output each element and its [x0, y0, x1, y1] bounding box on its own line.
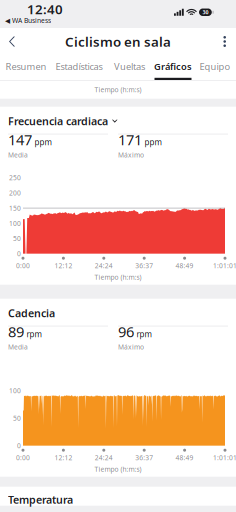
staticText: Vueltas	[114, 60, 145, 73]
staticText: 0:00	[16, 453, 30, 462]
staticText: 100	[9, 386, 21, 395]
staticText: 0	[17, 249, 21, 258]
staticText: 1:01:01	[213, 261, 236, 270]
staticText: Tiempo (h:m:s)	[94, 273, 141, 282]
staticText: Frecuencia cardiaca	[8, 114, 108, 128]
button[interactable]: More options	[211, 30, 236, 53]
staticText: 12:40	[27, 0, 63, 18]
staticText: rpm	[26, 329, 41, 339]
staticText: Máximo	[118, 150, 144, 159]
button[interactable]: Frecuencia cardiaca	[8, 107, 228, 134]
staticText: 147	[8, 130, 32, 149]
button[interactable]: Equipo	[195, 55, 235, 80]
staticText: Gráficos	[154, 60, 192, 73]
button[interactable]: Cadencia	[8, 299, 228, 326]
staticText: 36:37	[135, 453, 153, 462]
staticText: 89	[8, 322, 24, 341]
staticText: Ciclismo en sala	[65, 33, 171, 50]
staticText: 48:49	[176, 453, 194, 462]
staticText: 30	[202, 9, 208, 16]
staticText: Temperatura	[8, 493, 73, 507]
staticText: 48:49	[176, 261, 194, 270]
button[interactable]: Gráficos	[151, 55, 195, 80]
staticText: Media	[8, 342, 28, 351]
staticText: ppm	[144, 137, 161, 147]
button[interactable]: Resumen	[2, 55, 50, 80]
staticText: 96	[118, 322, 134, 341]
staticText: Tiempo (h:m:s)	[94, 85, 141, 94]
staticText: Tiempo (h:m:s)	[94, 465, 141, 474]
staticText: 200	[9, 188, 21, 197]
button[interactable]: Back	[0, 30, 27, 52]
staticText: 0:00	[16, 261, 30, 270]
staticText: 12:12	[54, 261, 72, 270]
staticText: Resumen	[5, 60, 46, 73]
staticText: 24:24	[95, 453, 113, 462]
staticText: 12:12	[54, 453, 72, 462]
staticText: 50	[13, 414, 21, 423]
staticText: 100	[9, 219, 21, 228]
staticText: 0	[17, 441, 21, 450]
staticText: ppm	[34, 137, 51, 147]
button[interactable]: Vueltas	[108, 55, 151, 80]
button[interactable]: Estadísticas	[50, 55, 108, 80]
staticText: 1:01:01	[213, 453, 236, 462]
staticText: 36:37	[135, 261, 153, 270]
staticText: 250	[9, 173, 21, 182]
staticText: 24:24	[95, 261, 113, 270]
staticText: 171	[118, 130, 142, 149]
staticText: 150	[9, 204, 21, 213]
staticText: Estadísticas	[55, 60, 102, 73]
staticText: ◀ WA Business	[5, 16, 51, 25]
staticText: rpm	[136, 329, 151, 339]
staticText: Media	[8, 150, 28, 159]
staticText: 50	[13, 234, 21, 243]
staticText: Cadencia	[8, 306, 55, 320]
staticText: Máximo	[118, 342, 144, 351]
staticText: Equipo	[199, 60, 230, 73]
